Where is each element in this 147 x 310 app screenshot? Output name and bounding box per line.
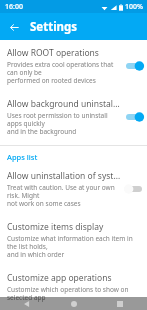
button[interactable]: Back [4,17,24,37]
button[interactable]: Customize app operations [0,267,147,307]
staticText: Apps list [7,152,38,162]
button[interactable]: Allow uninstallation of system apps (RO… [0,165,147,213]
button[interactable]: Recents [115,299,125,309]
staticText: Settings [30,19,78,35]
staticText: Uses root permission to uninstall apps q… [7,111,121,136]
staticText: Treat with caution. Use at your own risk… [7,183,121,208]
staticText: Allow background uninstallation (ROOT) [7,98,121,110]
staticText: Provides extra cool operations that can … [7,60,121,85]
staticText: Customize which operations to show on se… [7,285,144,302]
button[interactable]: Customize items display [0,216,147,264]
staticText: Allow uninstallation of system apps (RO… [7,170,121,182]
staticText: Customize what information each item in … [7,234,144,259]
staticText: 16:00 [5,2,23,12]
staticText: Customize items display [7,221,104,233]
staticText: Allow ROOT operations [7,47,99,59]
button[interactable]: Home [69,299,79,309]
button[interactable]: Allow background uninstallation (ROOT) [0,93,147,141]
staticText: Customize app operations [7,272,112,284]
button[interactable]: Back [22,299,32,309]
staticText: 100% [125,2,143,12]
button[interactable]: Allow ROOT operations [0,42,147,90]
